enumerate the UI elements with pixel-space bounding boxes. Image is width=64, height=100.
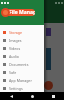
button[interactable]: Home	[22, 92, 43, 100]
staticText: Settings	[9, 86, 23, 91]
button[interactable]: Safe	[0, 68, 44, 76]
button[interactable]: Add	[44, 81, 53, 90]
staticText: Safe	[9, 70, 17, 75]
staticText: File Manager	[9, 9, 35, 16]
button[interactable]: Storage	[0, 28, 44, 36]
staticText: Audio	[9, 54, 19, 59]
staticText: Videos	[9, 46, 21, 51]
staticText: App Manager	[9, 78, 32, 83]
button[interactable]: Settings	[0, 84, 44, 92]
button[interactable]: Documents	[0, 60, 44, 68]
staticText: Images	[9, 38, 22, 43]
button[interactable]: Images	[0, 36, 44, 44]
staticText: Storage	[9, 30, 23, 35]
button[interactable]: Recent apps	[43, 92, 64, 100]
button[interactable]: Back	[0, 92, 22, 100]
staticText: Documents	[9, 62, 29, 67]
button[interactable]: App Manager	[0, 76, 44, 84]
button[interactable]: Audio	[0, 52, 44, 60]
button[interactable]: Videos	[0, 44, 44, 52]
